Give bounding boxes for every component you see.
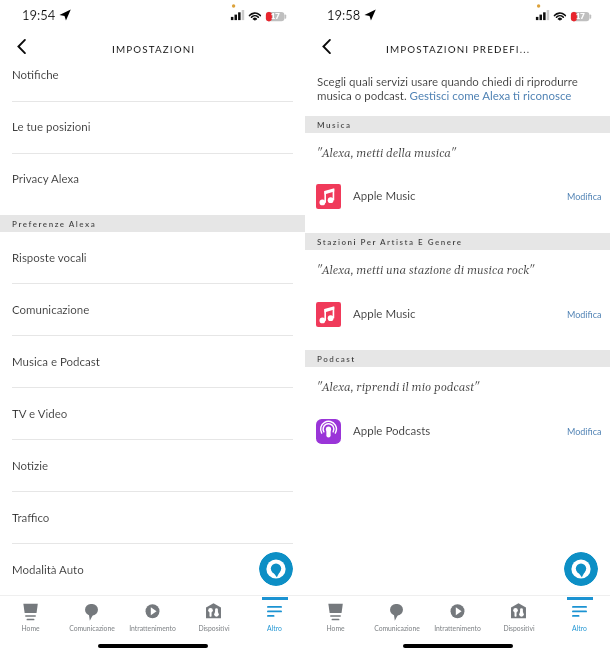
- button[interactable]: Comunicazione: [366, 596, 427, 638]
- staticText: Modifica: [567, 426, 602, 437]
- staticText: "Alexa, riprendi il mio podcast": [317, 380, 479, 395]
- staticText: Home: [21, 624, 40, 632]
- staticText: Modalità Auto: [12, 563, 84, 577]
- staticText: Preferenze Alexa: [12, 219, 97, 229]
- staticText: Le tue posizioni: [12, 120, 91, 134]
- button[interactable]: Intrattenimento: [122, 596, 183, 638]
- button[interactable]: Dispositivi: [183, 596, 244, 638]
- button[interactable]: Comunicazione: [0, 286, 305, 334]
- staticText: Modifica: [567, 191, 602, 202]
- button[interactable]: Apple Music: [305, 293, 610, 335]
- button[interactable]: Modifica: [565, 304, 604, 325]
- staticText: Comunicazione: [12, 303, 90, 317]
- button[interactable]: Altro: [244, 596, 305, 638]
- button[interactable]: Dispositivi: [488, 596, 549, 638]
- staticText: 19:58: [327, 7, 361, 23]
- staticText: 19:54: [22, 7, 56, 23]
- button[interactable]: Alexa: [564, 552, 598, 586]
- button[interactable]: Modifica: [565, 421, 604, 442]
- staticText: 17: [576, 12, 585, 21]
- button[interactable]: Risposte vocali: [0, 234, 305, 282]
- staticText: 17: [271, 12, 280, 21]
- staticText: "Alexa, metti una stazione di musica roc…: [317, 263, 535, 278]
- staticText: TV e Video: [12, 407, 68, 421]
- staticText: Podcast: [317, 354, 356, 364]
- staticText: Dispositivi: [503, 624, 535, 632]
- button[interactable]: Apple Podcasts: [305, 410, 610, 452]
- staticText: Stazioni Per Artista E Genere: [317, 237, 463, 247]
- staticText: Notifiche: [12, 68, 59, 82]
- staticText: Scegli quali servizi usare quando chiedi…: [317, 75, 594, 102]
- button[interactable]: Modalità Auto: [0, 546, 305, 594]
- button[interactable]: Home: [305, 596, 366, 638]
- button[interactable]: Back: [10, 35, 32, 57]
- staticText: Comunicazione: [69, 624, 115, 632]
- button[interactable]: Home: [0, 596, 61, 638]
- staticText: Risposte vocali: [12, 251, 87, 265]
- staticText: Comunicazione: [374, 624, 420, 632]
- staticText: Traffico: [12, 511, 50, 525]
- staticText: IMPOSTAZIONI PREDEFI...: [386, 43, 531, 55]
- button[interactable]: Comunicazione: [61, 596, 122, 638]
- staticText: Apple Podcasts: [353, 424, 431, 438]
- staticText: Intrattenimento: [129, 624, 176, 632]
- staticText: Notizie: [12, 459, 49, 473]
- staticText: "Alexa, metti della musica": [317, 146, 456, 161]
- staticText: Dispositivi: [198, 624, 230, 632]
- button[interactable]: Le tue posizioni: [0, 103, 305, 151]
- button[interactable]: Privacy Alexa: [0, 155, 305, 203]
- button[interactable]: TV e Video: [0, 390, 305, 438]
- button[interactable]: Altro: [549, 596, 610, 638]
- staticText: Musica e Podcast: [12, 355, 100, 369]
- staticText: Privacy Alexa: [12, 172, 79, 186]
- staticText: Musica: [317, 120, 352, 130]
- button[interactable]: Modifica: [565, 186, 604, 207]
- staticText: Home: [326, 624, 345, 632]
- button[interactable]: Traffico: [0, 494, 305, 542]
- button[interactable]: Musica e Podcast: [0, 338, 305, 386]
- button[interactable]: Back: [315, 35, 337, 57]
- staticText: Intrattenimento: [434, 624, 481, 632]
- staticText: Altro: [572, 624, 587, 632]
- button[interactable]: Apple Music: [305, 175, 610, 217]
- button[interactable]: Intrattenimento: [427, 596, 488, 638]
- button[interactable]: Alexa: [259, 552, 293, 586]
- staticText: Modifica: [567, 309, 602, 320]
- staticText: Altro: [267, 624, 282, 632]
- staticText: IMPOSTAZIONI: [112, 43, 196, 55]
- button[interactable]: Notizie: [0, 442, 305, 490]
- staticText: Apple Music: [353, 307, 416, 321]
- button[interactable]: Notifiche: [0, 51, 305, 99]
- staticText: Apple Music: [353, 189, 416, 203]
